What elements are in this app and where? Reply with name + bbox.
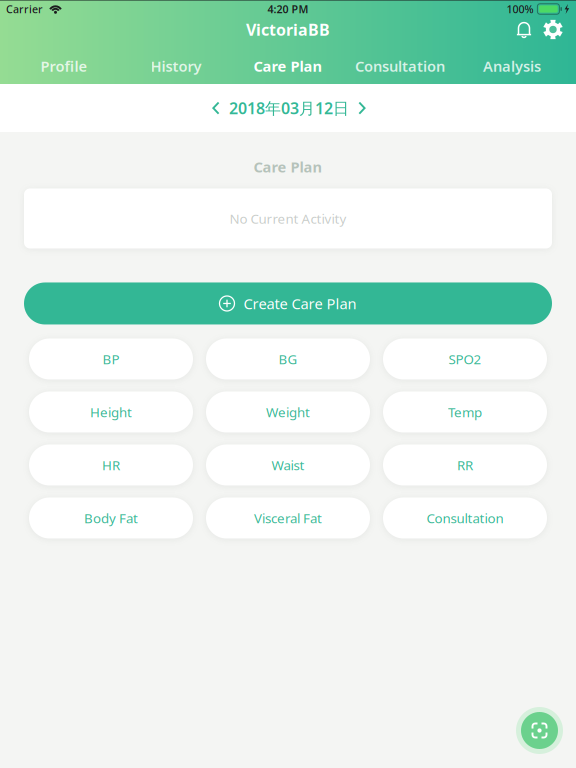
button[interactable]: Waist: [206, 444, 370, 485]
staticText: Carrier: [6, 2, 43, 16]
button[interactable]: Consultation: [383, 497, 547, 538]
button[interactable]: BP: [29, 338, 193, 379]
staticText: Profile: [40, 56, 87, 76]
button[interactable]: Care Plan: [232, 51, 344, 81]
staticText: Care Plan: [253, 157, 322, 176]
button[interactable]: Notifications: [510, 20, 538, 39]
staticText: History: [150, 56, 201, 76]
button[interactable]: SPO2: [383, 338, 547, 379]
button[interactable]: Scan: [516, 707, 563, 754]
staticText: Create Care Plan: [243, 294, 356, 313]
staticText: 4:20 PM: [267, 2, 308, 16]
staticText: Consultation: [426, 509, 503, 527]
staticText: 100%: [506, 2, 533, 16]
button[interactable]: BG: [206, 338, 370, 379]
button[interactable]: Settings: [538, 19, 568, 39]
staticText: Waist: [271, 456, 304, 474]
staticText: Consultation: [355, 56, 445, 76]
staticText: RR: [457, 456, 473, 474]
staticText: Visceral Fat: [254, 509, 322, 527]
button[interactable]: HR: [29, 444, 193, 485]
staticText: Analysis: [483, 56, 541, 76]
button[interactable]: Previous day: [208, 97, 224, 118]
button[interactable]: Profile: [8, 51, 120, 81]
staticText: No Current Activity: [229, 210, 346, 227]
staticText: Body Fat: [84, 509, 138, 527]
button[interactable]: Visceral Fat: [206, 497, 370, 538]
button[interactable]: Analysis: [456, 51, 568, 81]
staticText: BP: [102, 350, 119, 368]
button[interactable]: Weight: [206, 391, 370, 432]
button[interactable]: RR: [383, 444, 547, 485]
button[interactable]: Body Fat: [29, 497, 193, 538]
staticText: Care Plan: [253, 56, 322, 76]
button[interactable]: History: [120, 51, 232, 81]
button[interactable]: Height: [29, 391, 193, 432]
button[interactable]: Next day: [354, 97, 370, 118]
staticText: VictoriaBB: [246, 19, 330, 40]
staticText: Temp: [448, 403, 482, 421]
staticText: BG: [278, 350, 297, 368]
button[interactable]: Create Care Plan: [24, 282, 552, 324]
staticText: Weight: [266, 403, 310, 421]
button[interactable]: Consultation: [344, 51, 456, 81]
staticText: SPO2: [448, 350, 481, 368]
staticText: 2018年03月12日: [229, 97, 349, 119]
button[interactable]: Temp: [383, 391, 547, 432]
staticText: HR: [102, 456, 120, 474]
staticText: Height: [90, 403, 132, 421]
